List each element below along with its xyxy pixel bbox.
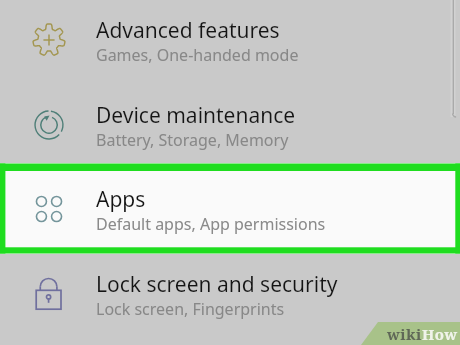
staticText: Lock screen and security bbox=[96, 270, 338, 299]
staticText: Advanced features bbox=[96, 16, 280, 45]
button[interactable]: Apps bbox=[0, 169, 460, 254]
staticText: Default apps, App permissions bbox=[96, 213, 326, 235]
staticText: Lock screen, Fingerprints bbox=[96, 298, 285, 320]
button[interactable]: Lock screen and security bbox=[0, 254, 460, 339]
other: Apps bbox=[35, 195, 63, 223]
other: Device maintenance bbox=[34, 110, 64, 140]
staticText: Games, One-handed mode bbox=[96, 44, 299, 66]
staticText: How bbox=[422, 324, 458, 344]
button[interactable]: Advanced features bbox=[0, 0, 460, 85]
staticText: wiki bbox=[387, 324, 422, 344]
button[interactable]: Device maintenance bbox=[0, 85, 460, 170]
other: Lock screen and security bbox=[33, 278, 65, 310]
other: Advanced features bbox=[33, 24, 65, 56]
staticText: Device maintenance bbox=[96, 101, 296, 130]
staticText: Apps bbox=[96, 185, 146, 214]
staticText: Battery, Storage, Memory bbox=[96, 129, 289, 151]
